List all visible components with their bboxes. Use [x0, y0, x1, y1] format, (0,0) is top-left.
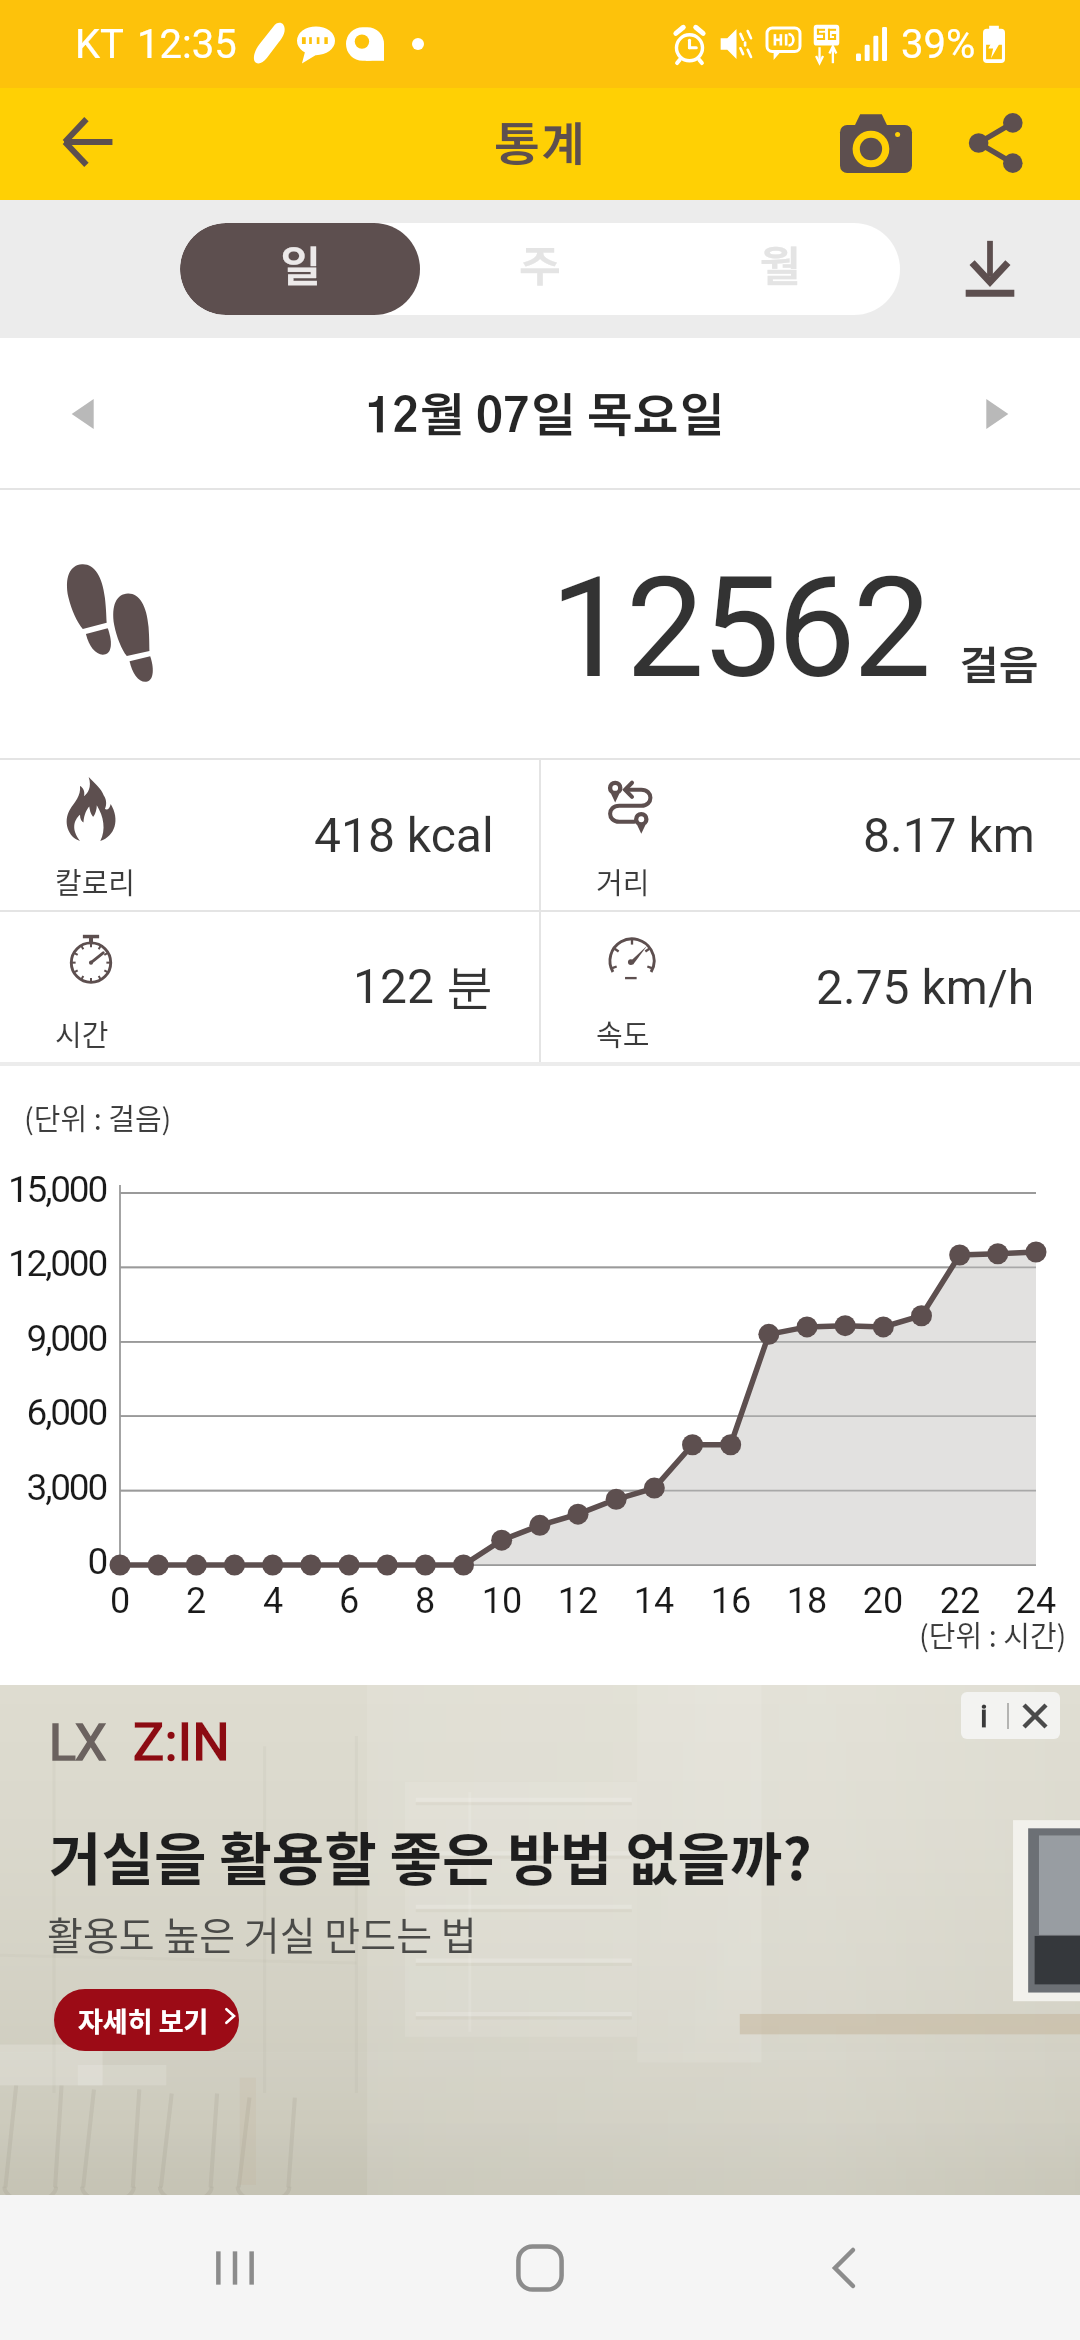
staticText: 122 분 — [353, 957, 494, 1017]
staticText: KT — [75, 21, 124, 68]
button[interactable]: LX — [0, 1685, 1080, 2195]
staticText: 8 — [385, 1580, 465, 1622]
button[interactable]: Recents — [165, 2198, 305, 2338]
staticText: 자세히 보기 — [78, 2001, 209, 2040]
staticText: 418 kcal — [314, 807, 494, 863]
button[interactable]: 주 — [420, 223, 660, 315]
staticText: 0 — [0, 1540, 106, 1583]
staticText: 8.17 km — [863, 807, 1035, 863]
staticText: 통계 — [494, 124, 586, 170]
button[interactable]: Camera — [824, 92, 928, 196]
button[interactable]: Download — [940, 219, 1040, 319]
staticText: (단위 : 걸음) — [24, 1096, 172, 1138]
staticText: 2 — [156, 1580, 236, 1622]
staticText: 칼로리 — [55, 860, 136, 902]
staticText: 걸음 — [959, 648, 1039, 688]
staticText: 12 — [538, 1580, 618, 1622]
button[interactable]: Back — [36, 92, 140, 196]
button[interactable]: Ad info — [961, 1692, 1007, 1739]
staticText: 6 — [309, 1580, 389, 1622]
staticText: 15,000 — [0, 1168, 106, 1211]
staticText: 0 — [80, 1580, 160, 1622]
staticText: 4 — [233, 1580, 313, 1622]
staticText: 시간 — [55, 1012, 109, 1054]
button[interactable]: Home — [470, 2198, 610, 2338]
staticText: Z:IN — [133, 1712, 230, 1773]
staticText: 12월 07일 목요일 — [365, 395, 725, 441]
staticText: 6,000 — [0, 1391, 106, 1434]
staticText: 14 — [614, 1580, 694, 1622]
staticText: 16 — [691, 1580, 771, 1622]
button[interactable]: Back — [775, 2198, 915, 2338]
staticText: 39% — [901, 21, 976, 68]
button[interactable]: Next day — [946, 364, 1046, 464]
staticText: i — [980, 1697, 988, 1735]
staticText: 2.75 km/h — [816, 959, 1035, 1015]
button[interactable]: 월 — [660, 223, 900, 315]
button[interactable]: Previous day — [34, 364, 134, 464]
staticText: 9,000 — [0, 1317, 106, 1360]
staticText: 18 — [767, 1580, 847, 1622]
staticText: LX — [49, 1714, 106, 1773]
staticText: 20 — [843, 1580, 923, 1622]
button[interactable]: 거리 — [541, 760, 1080, 910]
staticText: 12562 — [550, 546, 929, 710]
staticText: 10 — [462, 1580, 542, 1622]
button[interactable]: 속도 — [541, 912, 1080, 1062]
button[interactable]: Share — [944, 92, 1048, 196]
staticText: 12,000 — [0, 1242, 106, 1285]
staticText: 월 — [759, 248, 801, 290]
staticText: 일 — [279, 248, 321, 290]
staticText: 12:35 — [137, 21, 237, 68]
button[interactable]: 자세히 보기 — [54, 1989, 239, 2051]
button[interactable]: 시간 — [0, 912, 539, 1062]
staticText: (단위 : 시간) — [919, 1613, 1067, 1655]
staticText: 24 — [996, 1580, 1076, 1622]
button[interactable]: 12562 — [0, 490, 1080, 760]
button[interactable]: 일 — [180, 223, 420, 315]
staticText: 주 — [519, 248, 561, 290]
staticText: 거리 — [596, 860, 650, 902]
button[interactable]: 칼로리 — [0, 760, 539, 910]
staticText: 22 — [920, 1580, 1000, 1622]
staticText: 활용도 높은 거실 만드는 법 — [47, 1905, 477, 1961]
button[interactable]: Close ad — [1009, 1692, 1060, 1739]
staticText: 3,000 — [0, 1466, 106, 1509]
staticText: 속도 — [596, 1012, 650, 1054]
staticText: 거실을 활용할 좋은 방법 없을까? — [49, 1814, 812, 1897]
